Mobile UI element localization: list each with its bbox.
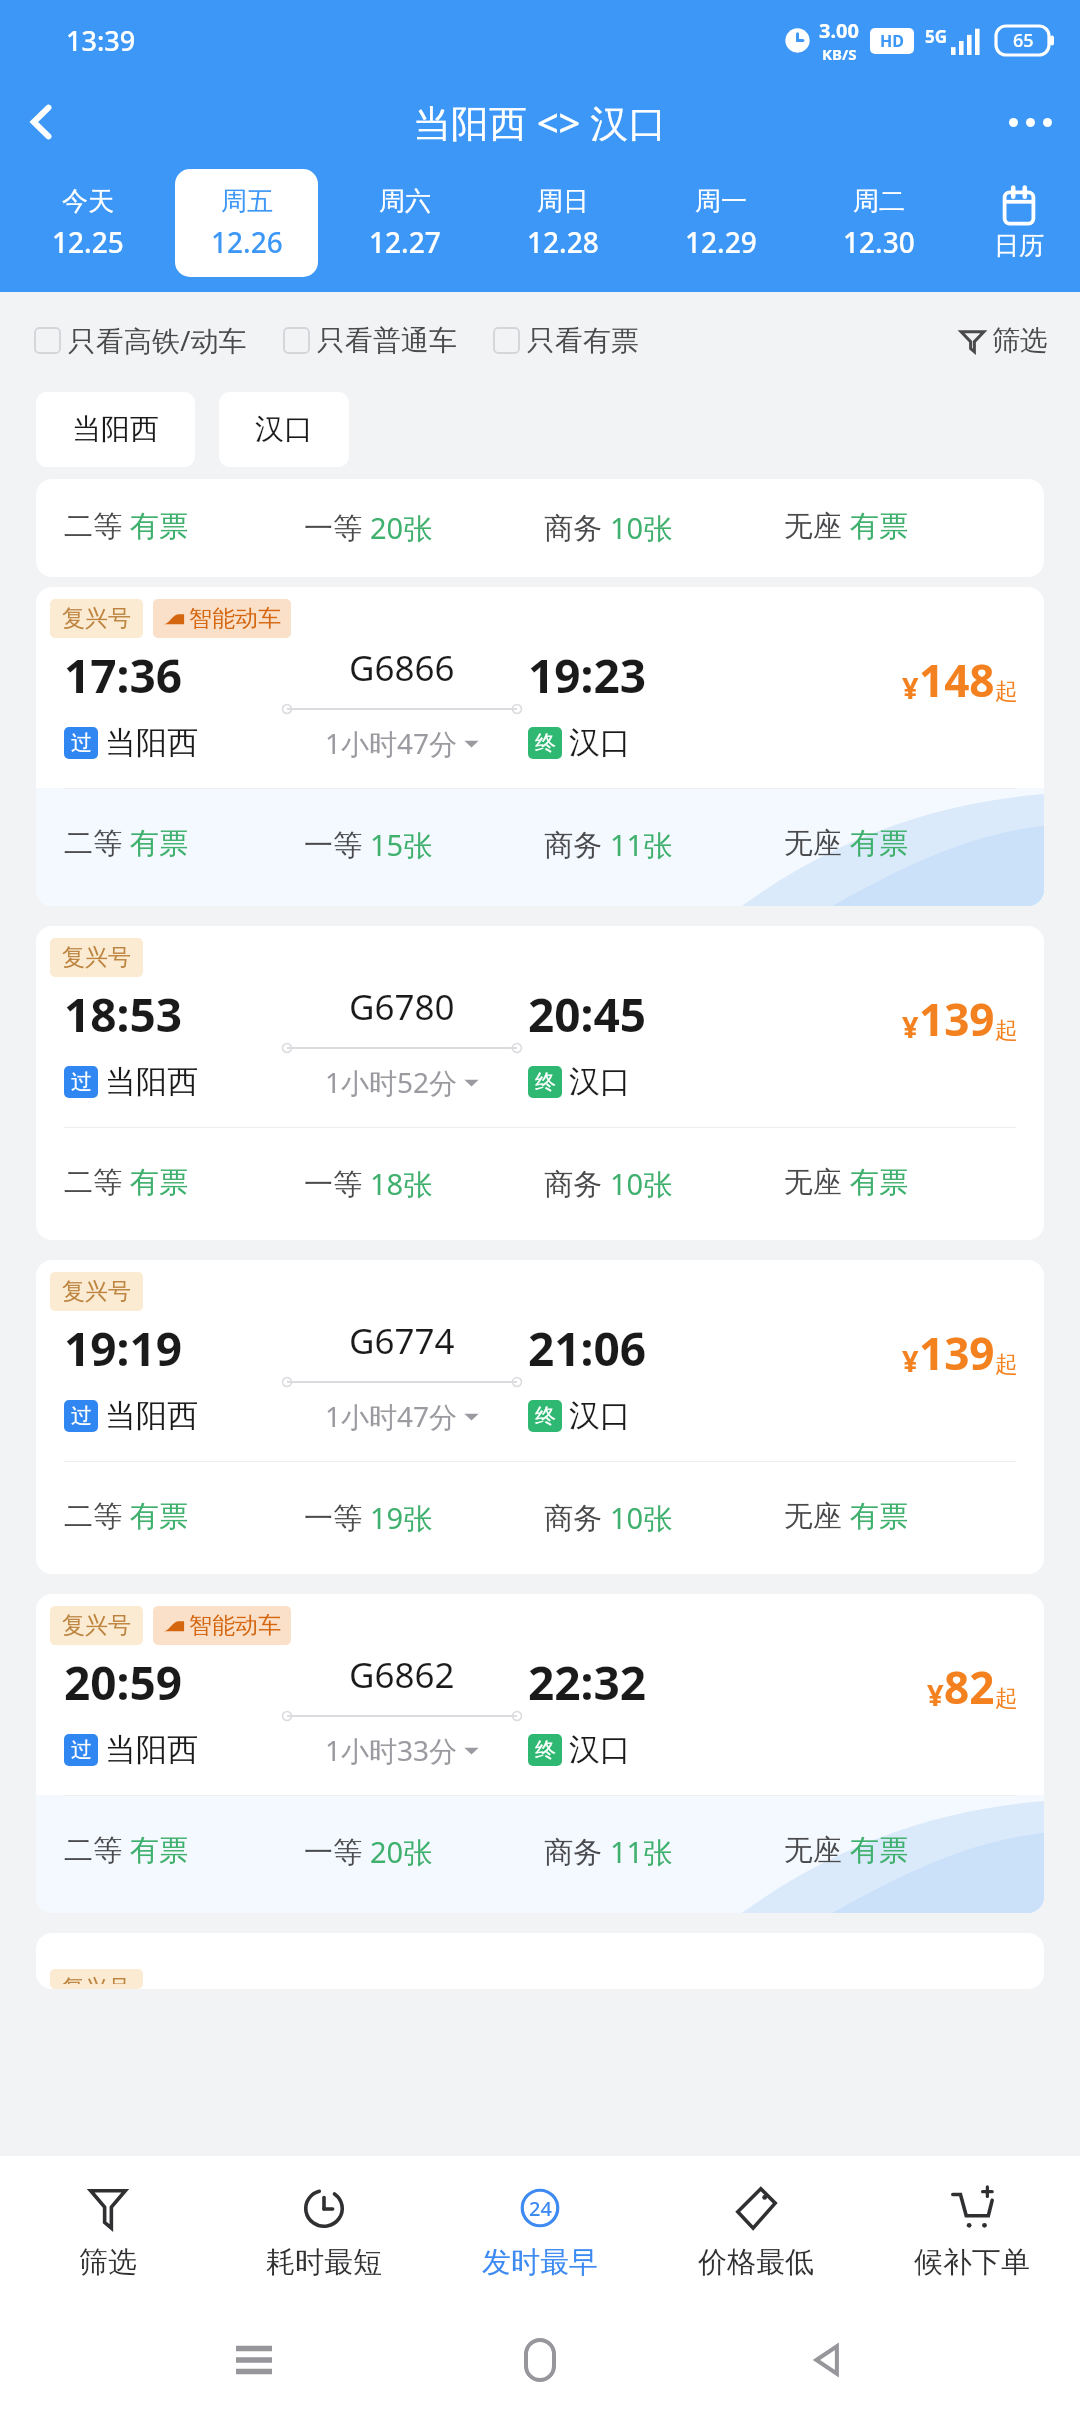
staticText: 终: [535, 1737, 556, 1763]
staticText: 终: [535, 1403, 556, 1429]
staticText: 有票: [850, 825, 908, 862]
button[interactable]: 复兴号: [36, 926, 1044, 1240]
button[interactable]: 筛选: [953, 313, 1054, 368]
staticText: 12.28: [527, 223, 599, 261]
staticText: 二等: [64, 1832, 122, 1869]
staticText: 有票: [850, 1498, 908, 1535]
button[interactable]: 周五: [175, 169, 318, 277]
staticText: 一等: [304, 510, 362, 547]
staticText: 周日: [537, 185, 589, 218]
staticText: G6866: [349, 644, 455, 692]
button[interactable]: Back: [0, 80, 84, 164]
staticText: 无座: [784, 1164, 842, 1201]
staticText: 有票: [130, 1164, 188, 1201]
button[interactable]: 候补下单: [864, 2156, 1080, 2308]
staticText: 有票: [130, 508, 188, 545]
staticText: 过: [71, 1737, 92, 1763]
staticText: 有票: [850, 1832, 908, 1869]
button[interactable]: 复兴号: [36, 1933, 1044, 1989]
button[interactable]: 周日: [492, 169, 634, 277]
staticText: 汉口: [569, 1062, 631, 1101]
staticText: 智能动车: [189, 604, 281, 633]
button[interactable]: 日历: [958, 164, 1080, 282]
staticText: 有票: [130, 825, 188, 862]
staticText: 日历: [994, 230, 1044, 261]
button[interactable]: 当阳西: [36, 392, 195, 467]
button[interactable]: 复兴号: [36, 1260, 1044, 1574]
staticText: 无座: [784, 1498, 842, 1535]
staticText: 复兴号: [62, 943, 131, 972]
button[interactable]: 只看有票: [493, 313, 639, 368]
button[interactable]: 今天: [16, 169, 159, 277]
button[interactable]: 复兴号: [36, 587, 1044, 906]
staticText: 二等: [64, 825, 122, 862]
staticText: ¥: [902, 668, 919, 707]
staticText: 有票: [130, 1832, 188, 1869]
staticText: 当阳西: [105, 723, 198, 762]
staticText: 过: [71, 1069, 92, 1095]
staticText: 当阳西: [105, 1396, 198, 1435]
button[interactable]: 耗时最短: [216, 2156, 432, 2308]
staticText: 起: [995, 677, 1018, 706]
staticText: 13:39: [66, 22, 136, 59]
button[interactable]: Back: [794, 2327, 860, 2393]
staticText: 二等: [64, 508, 122, 545]
staticText: 无座: [784, 825, 842, 862]
staticText: 筛选: [79, 2244, 137, 2281]
button[interactable]: 只看普通车: [283, 313, 457, 368]
staticText: 价格最低: [698, 2244, 814, 2281]
staticText: 今天: [62, 185, 114, 218]
staticText: 一等: [304, 1834, 362, 1871]
staticText: 当阳西: [105, 1730, 198, 1769]
staticText: 10张: [610, 508, 673, 548]
staticText: 有票: [130, 1498, 188, 1535]
staticText: 发时最早: [482, 2244, 598, 2281]
staticText: KB/S: [822, 44, 857, 64]
staticText: 10张: [610, 1164, 673, 1204]
staticText: 一等: [304, 1166, 362, 1203]
staticText: 11张: [610, 1832, 673, 1872]
button[interactable]: 筛选: [0, 2156, 216, 2308]
staticText: 22:32: [528, 1651, 647, 1714]
staticText: ¥: [927, 1675, 944, 1714]
button[interactable]: 24: [432, 2156, 648, 2308]
button[interactable]: Home: [507, 2327, 573, 2393]
staticText: 11张: [610, 825, 673, 865]
staticText: 过: [71, 730, 92, 756]
button[interactable]: More options: [980, 80, 1080, 164]
staticText: 有票: [850, 1164, 908, 1201]
button[interactable]: 只看高铁/动车: [34, 311, 247, 369]
staticText: 周一: [695, 185, 747, 218]
button[interactable]: Recents: [221, 2327, 287, 2393]
button[interactable]: 价格最低: [648, 2156, 864, 2308]
staticText: 20:59: [64, 1651, 183, 1714]
staticText: 候补下单: [914, 2244, 1030, 2281]
button[interactable]: 复兴号: [36, 1594, 1044, 1913]
staticText: 复兴号: [62, 1974, 131, 1984]
staticText: 周五: [221, 185, 273, 218]
button[interactable]: 周一: [650, 169, 792, 277]
staticText: 汉口: [255, 411, 313, 448]
staticText: 18张: [370, 1164, 433, 1204]
staticText: 复兴号: [62, 604, 131, 633]
staticText: 3.00: [819, 17, 859, 44]
staticText: 24: [529, 2195, 552, 2222]
staticText: 19张: [370, 1498, 433, 1538]
staticText: 商务: [544, 1500, 602, 1537]
staticText: 智能动车: [189, 1611, 281, 1640]
staticText: 商务: [544, 1834, 602, 1871]
staticText: 筛选: [992, 323, 1048, 358]
button[interactable]: 周六: [334, 169, 476, 277]
staticText: 起: [995, 1016, 1018, 1045]
staticText: 汉口: [569, 1730, 631, 1769]
staticText: 10张: [610, 1498, 673, 1538]
staticText: 商务: [544, 510, 602, 547]
button[interactable]: 周二: [808, 169, 950, 277]
staticText: 19:19: [64, 1317, 183, 1380]
staticText: 139: [919, 1323, 995, 1383]
button[interactable]: 二等: [36, 479, 1044, 577]
staticText: 12.26: [211, 223, 283, 261]
staticText: ¥: [902, 1007, 919, 1046]
button[interactable]: 汉口: [219, 392, 349, 467]
staticText: 一等: [304, 1500, 362, 1537]
